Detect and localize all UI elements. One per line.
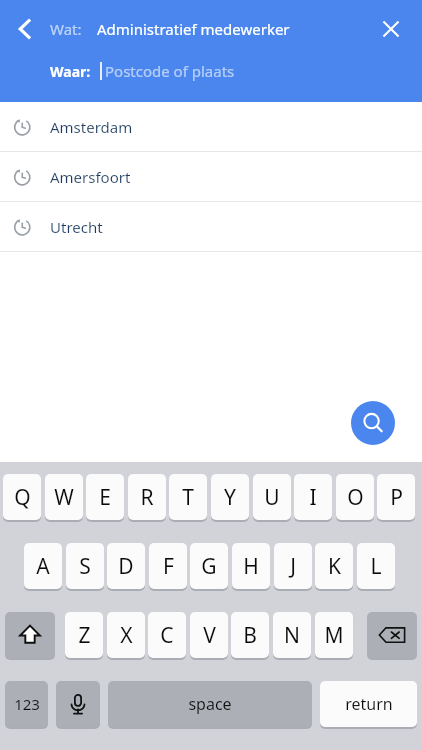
staticText: U [264,483,280,512]
button[interactable]: K [315,543,353,589]
button[interactable]: N [273,612,311,658]
button[interactable]: W [45,474,83,520]
staticText: W [54,483,74,512]
button[interactable]: D [107,543,145,589]
button[interactable]: Close [368,6,414,52]
staticText: space [188,693,232,715]
button[interactable]: I [294,474,332,520]
button[interactable]: Wat: [50,14,380,44]
button[interactable]: F [149,543,187,589]
staticText: V [203,621,216,650]
staticText: G [201,552,217,581]
button[interactable]: 123 [5,681,48,727]
staticText: Postcode of plaats [105,61,235,81]
staticText: D [118,552,134,581]
staticText: X [120,621,133,650]
staticText: 123 [14,694,40,714]
staticText: Administratief medewerker [97,19,290,39]
button[interactable]: space [108,681,312,727]
staticText: Waar: [50,62,91,81]
staticText: Q [14,483,31,512]
staticText: H [243,552,259,581]
staticText: K [328,552,341,581]
button[interactable]: V [190,612,228,658]
button[interactable]: P [377,474,415,520]
staticText: M [324,621,344,650]
staticText: Z [78,621,91,650]
staticText: Amersfoort [50,167,131,187]
button[interactable]: O [336,474,374,520]
staticText: B [243,621,257,650]
button[interactable]: T [169,474,207,520]
button[interactable]: Utrecht [0,202,422,251]
button[interactable]: Dictate [56,681,100,727]
button[interactable]: E [86,474,124,520]
staticText: Amsterdam [50,117,133,137]
staticText: F [163,552,174,581]
button[interactable]: return [320,681,417,727]
staticText: I [309,483,317,512]
staticText: T [182,483,194,512]
staticText: O [347,483,364,512]
staticText: Utrecht [50,217,103,237]
staticText: E [99,483,111,512]
staticText: P [390,483,403,512]
button[interactable]: C [148,612,186,658]
button[interactable]: Z [65,612,103,658]
button[interactable]: Amersfoort [0,152,422,201]
staticText: R [140,483,154,512]
staticText: Wat: [50,19,82,39]
button[interactable]: X [107,612,145,658]
staticText: A [36,552,50,581]
staticText: C [160,621,174,650]
staticText: Y [224,483,236,512]
button[interactable]: B [231,612,269,658]
button[interactable]: Y [211,474,249,520]
button[interactable]: J [274,543,312,589]
button[interactable]: A [24,543,62,589]
staticText: J [290,552,296,581]
button[interactable]: G [190,543,228,589]
staticText: S [79,552,91,581]
staticText: N [284,621,300,650]
button[interactable]: Back [2,6,48,52]
button[interactable]: Amsterdam [0,102,422,151]
button[interactable]: M [315,612,353,658]
staticText: L [370,552,382,581]
button[interactable]: Q [3,474,41,520]
staticText: return [345,693,393,715]
button[interactable]: R [128,474,166,520]
button[interactable]: S [66,543,104,589]
button[interactable]: L [357,543,395,589]
button[interactable]: Search [351,401,395,445]
button[interactable]: Backspace [367,612,417,658]
button[interactable]: H [232,543,270,589]
button[interactable]: Waar: [50,57,380,85]
button[interactable]: U [253,474,291,520]
button[interactable]: Shift [5,612,55,658]
